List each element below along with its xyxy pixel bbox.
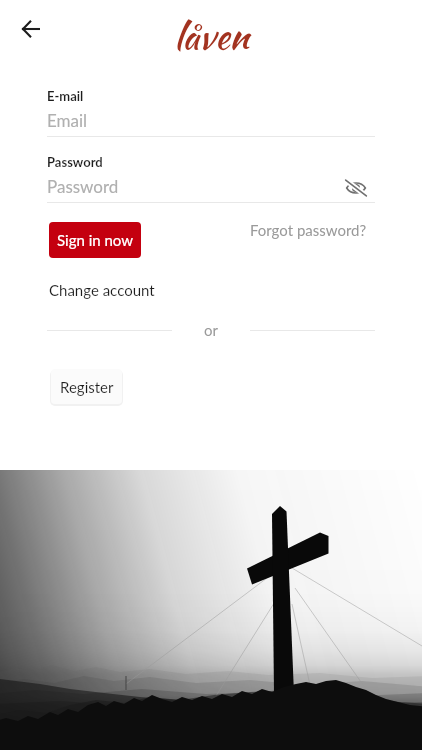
button[interactable]: Register — [51, 369, 122, 404]
staticText: låven — [174, 10, 249, 62]
staticText: E-mail — [47, 88, 84, 104]
staticText: Password — [47, 154, 103, 170]
button[interactable]: Sign in now — [49, 222, 141, 258]
staticText: Password — [47, 176, 119, 196]
staticText: Change account — [49, 281, 155, 299]
staticText: or — [204, 321, 218, 339]
button[interactable]: Change account — [43, 277, 161, 303]
staticText: Email — [47, 110, 88, 130]
button[interactable]: Forgot password? — [244, 216, 373, 244]
button[interactable]: Back — [15, 13, 47, 45]
button[interactable]: Show password — [341, 173, 371, 203]
staticText: Register — [60, 378, 114, 396]
staticText: Sign in now — [57, 231, 134, 249]
staticText: Forgot password? — [250, 221, 367, 239]
